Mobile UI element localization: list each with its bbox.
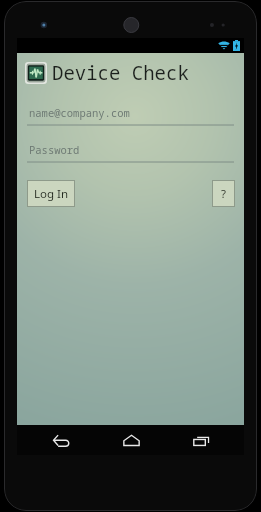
staticText: Device Check [52, 60, 189, 86]
button[interactable]: Recent apps [184, 425, 218, 455]
staticText: name@company.com [29, 106, 130, 120]
button[interactable]: name@company.com [27, 102, 234, 126]
button[interactable]: Home [114, 425, 148, 455]
button[interactable]: Log In [27, 180, 75, 207]
button[interactable]: Back [44, 425, 78, 455]
button[interactable]: Password [27, 139, 234, 163]
button[interactable]: Help [212, 180, 235, 207]
staticText: Password [29, 143, 80, 157]
staticText: ? [221, 186, 226, 202]
staticText: Log In [34, 186, 69, 202]
button[interactable]: Device Check app icon [25, 62, 47, 84]
